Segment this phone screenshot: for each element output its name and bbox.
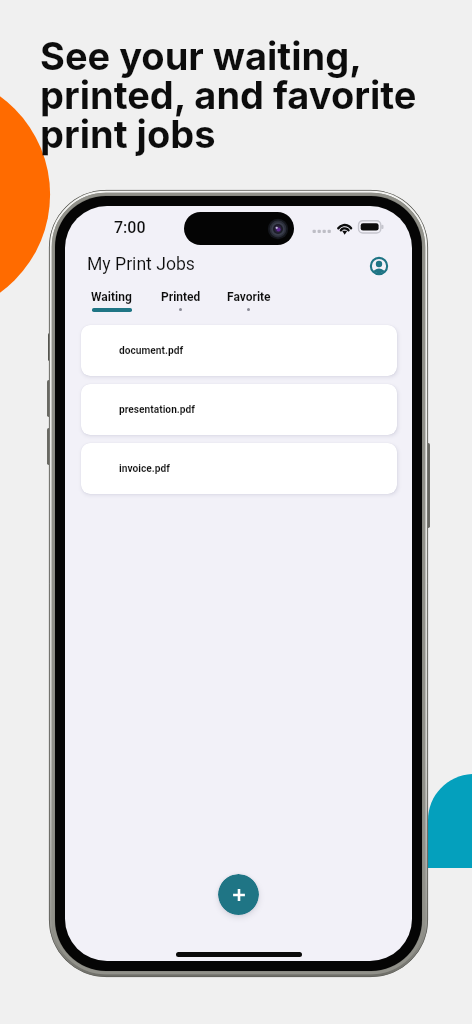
staticText: Favorite	[227, 290, 271, 304]
staticText: Waiting	[91, 290, 132, 304]
button[interactable]: Printed	[157, 286, 204, 314]
button[interactable]: invoice.pdf	[81, 443, 397, 494]
button[interactable]: Add print job	[218, 874, 259, 915]
staticText: document.pdf	[119, 345, 184, 357]
staticText: My Print Jobs	[87, 254, 195, 275]
button[interactable]: Favorite	[223, 286, 274, 314]
staticText: 7:00	[114, 218, 146, 237]
staticText: See your waiting, printed, and favorite …	[40, 33, 417, 158]
button[interactable]: Waiting	[87, 286, 136, 314]
button[interactable]: presentation.pdf	[81, 384, 397, 435]
staticText: Printed	[161, 290, 201, 304]
button[interactable]: Account	[366, 253, 392, 279]
staticText: presentation.pdf	[119, 404, 195, 416]
button[interactable]: document.pdf	[81, 325, 397, 376]
staticText: invoice.pdf	[119, 463, 170, 475]
